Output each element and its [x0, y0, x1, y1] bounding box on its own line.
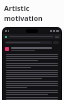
button[interactable] — [5, 41, 52, 44]
other: More options — [55, 36, 59, 38]
staticText: motivation — [4, 14, 43, 24]
staticText: Artistic — [4, 4, 30, 14]
button[interactable]: Filter — [53, 41, 59, 44]
button[interactable]: App icon — [5, 47, 9, 51]
button[interactable]: More options — [3, 34, 61, 39]
